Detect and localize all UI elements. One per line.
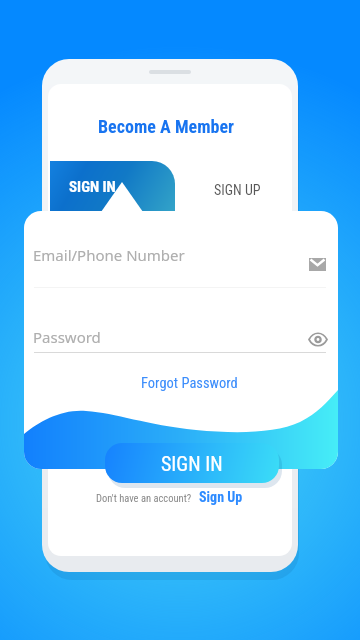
staticText: Don't have an account? bbox=[96, 492, 192, 504]
button[interactable]: SIGN IN bbox=[50, 161, 175, 212]
other: Show password bbox=[308, 333, 328, 346]
other: Email bbox=[309, 258, 326, 271]
staticText: Password bbox=[33, 327, 101, 347]
button[interactable]: SIGN UP bbox=[190, 164, 284, 215]
staticText: Become A Member bbox=[98, 116, 235, 137]
staticText: SIGN IN bbox=[161, 452, 223, 475]
staticText: Sign Up bbox=[199, 489, 243, 505]
button[interactable]: SIGN IN bbox=[105, 443, 279, 483]
staticText: Forgot Password bbox=[141, 375, 238, 392]
staticText: SIGN IN bbox=[69, 178, 116, 196]
staticText: SIGN UP bbox=[214, 182, 261, 198]
button[interactable]: Forgot Password bbox=[141, 375, 238, 392]
button[interactable]: Sign Up bbox=[199, 489, 243, 505]
staticText: Email/Phone Number bbox=[33, 245, 185, 265]
